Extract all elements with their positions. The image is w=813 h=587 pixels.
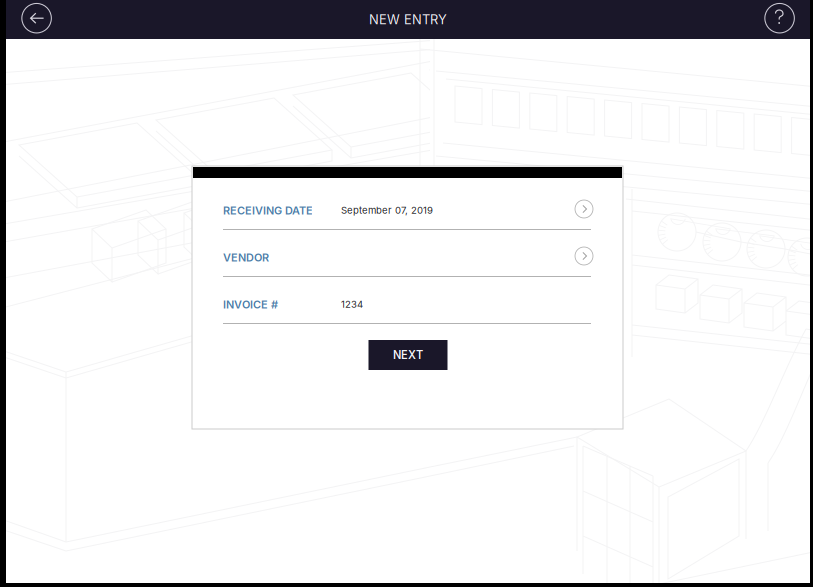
button[interactable]: Back	[16, 0, 58, 38]
staticText: 1234	[341, 298, 363, 310]
staticText: RECEIVING DATE	[223, 204, 313, 217]
staticText: VENDOR	[223, 251, 269, 264]
button[interactable]: VENDOR	[223, 251, 591, 286]
staticText: NEW ENTRY	[369, 12, 447, 27]
staticText: INVOICE #	[223, 298, 278, 311]
button[interactable]: Help	[759, 0, 801, 38]
button[interactable]: INVOICE #	[223, 298, 591, 333]
button[interactable]: NEXT	[368, 340, 447, 370]
button[interactable]: RECEIVING DATE	[223, 204, 591, 239]
staticText: NEXT	[393, 348, 423, 362]
staticText: September 07, 2019	[341, 204, 433, 216]
